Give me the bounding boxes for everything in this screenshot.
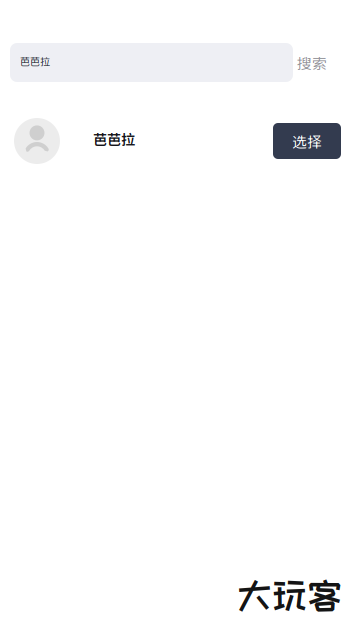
button[interactable]: 选择 bbox=[273, 123, 341, 159]
staticText: 芭芭拉 bbox=[93, 129, 135, 149]
staticText: 搜索 bbox=[297, 52, 327, 73]
button[interactable]: 芭芭拉 bbox=[10, 43, 293, 82]
button[interactable]: 搜索 bbox=[293, 43, 331, 82]
staticText: 大玩客 bbox=[237, 576, 342, 614]
staticText: 芭芭拉 bbox=[20, 54, 50, 68]
staticText: 选择 bbox=[292, 130, 322, 152]
